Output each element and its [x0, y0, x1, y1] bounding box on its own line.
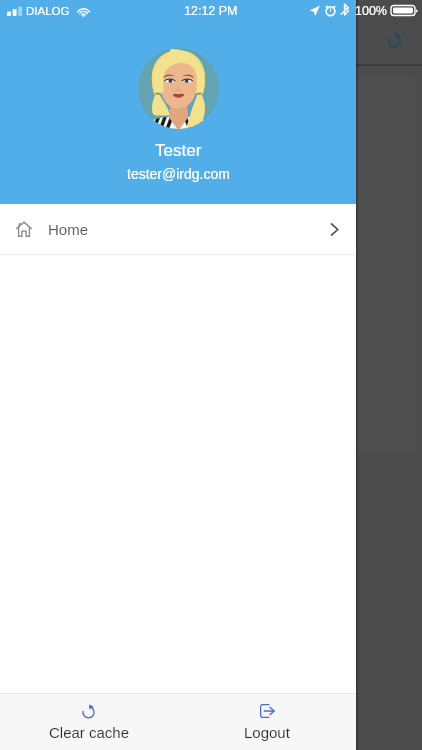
staticText: Logout — [244, 724, 290, 741]
button[interactable]: Home — [0, 204, 356, 254]
staticText: Clear cache — [49, 724, 130, 741]
other: Refresh — [387, 32, 403, 48]
staticText: Tester — [155, 141, 202, 160]
button[interactable]: Logout — [178, 694, 356, 750]
staticText: 100% — [355, 4, 387, 18]
staticText: 12:12 PM — [184, 4, 238, 18]
other: Open — [327, 222, 342, 237]
staticText: tester@irdg.com — [127, 166, 230, 182]
button[interactable]: Clear cache — [0, 694, 178, 750]
staticText: DIALOG — [26, 5, 70, 18]
staticText: Home — [48, 221, 89, 238]
